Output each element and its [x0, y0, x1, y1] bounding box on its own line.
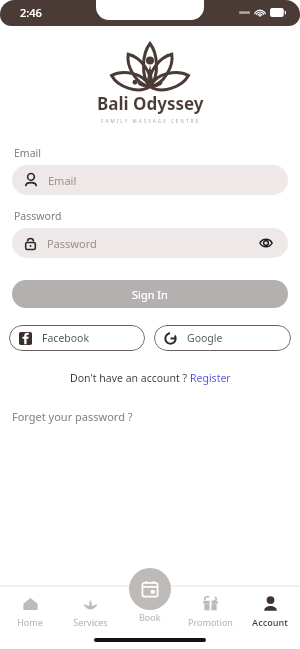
button[interactable]: Forget your password ? — [12, 409, 133, 424]
staticText: Don't have an account ? — [70, 371, 190, 385]
button[interactable]: Promotion — [180, 586, 240, 631]
staticText: F A M I L Y M A S S A G E C E N T R E — [101, 118, 199, 124]
staticText: 2:46 — [20, 5, 42, 20]
button[interactable]: Email — [12, 165, 288, 195]
staticText: Register — [190, 371, 231, 385]
button[interactable]: Register — [190, 371, 231, 385]
staticText: Facebook — [42, 331, 90, 345]
button[interactable]: Services — [60, 586, 120, 631]
button[interactable]: Google — [154, 325, 291, 351]
staticText: Services — [73, 616, 108, 628]
staticText: Promotion — [188, 616, 233, 628]
button[interactable]: Sign In — [12, 280, 288, 308]
staticText: Sign In — [132, 287, 168, 302]
button[interactable]: Password — [12, 228, 288, 258]
button[interactable]: Account — [240, 586, 300, 631]
staticText: Forget your password ? — [12, 409, 133, 424]
button[interactable]: Book — [129, 568, 171, 623]
staticText: Google — [187, 331, 223, 345]
staticText: Home — [17, 616, 43, 628]
button[interactable]: Show password — [256, 233, 276, 253]
staticText: Password — [47, 236, 97, 251]
button[interactable]: Home — [0, 586, 60, 631]
staticText: Account — [252, 616, 288, 628]
staticText: Bali Odyssey — [97, 92, 204, 115]
staticText: Email — [14, 146, 41, 160]
button[interactable]: Facebook — [9, 325, 145, 351]
staticText: Book — [139, 611, 161, 623]
staticText: Email — [48, 173, 77, 188]
staticText: Password — [14, 209, 62, 223]
